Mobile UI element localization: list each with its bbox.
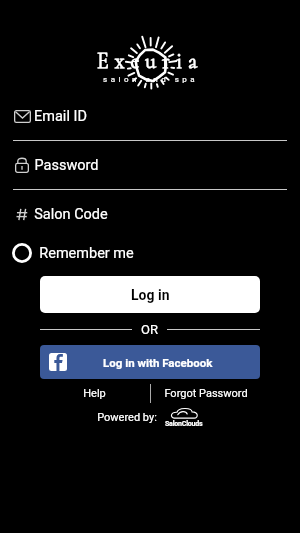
staticText: Help — [83, 387, 106, 400]
button[interactable]: Remember me — [0, 238, 300, 268]
button[interactable]: Log in with Facebook — [40, 345, 260, 379]
button[interactable]: Log in — [40, 276, 260, 313]
button[interactable]: Help — [47, 384, 141, 403]
staticText: Log in — [131, 287, 170, 303]
staticText: Forgot Password — [164, 387, 248, 400]
button[interactable]: Forgot Password — [150, 384, 262, 403]
staticText: Log in with Facebook — [103, 356, 213, 369]
staticText: Email ID — [34, 108, 87, 125]
staticText: Salon Code — [34, 206, 108, 223]
button[interactable]: Salon Code — [0, 190, 300, 238]
button[interactable]: Email ID — [0, 92, 300, 140]
staticText: Remember me — [39, 245, 134, 262]
staticText: Exeuria — [97, 48, 204, 75]
staticText: SalonClouds — [165, 420, 203, 428]
staticText: salon and spa — [103, 75, 199, 84]
other: Facebook — [49, 353, 67, 371]
staticText: Password — [34, 157, 99, 174]
button[interactable]: Password — [0, 141, 300, 189]
staticText: Powered by: — [97, 411, 157, 424]
staticText: OR — [141, 322, 158, 337]
